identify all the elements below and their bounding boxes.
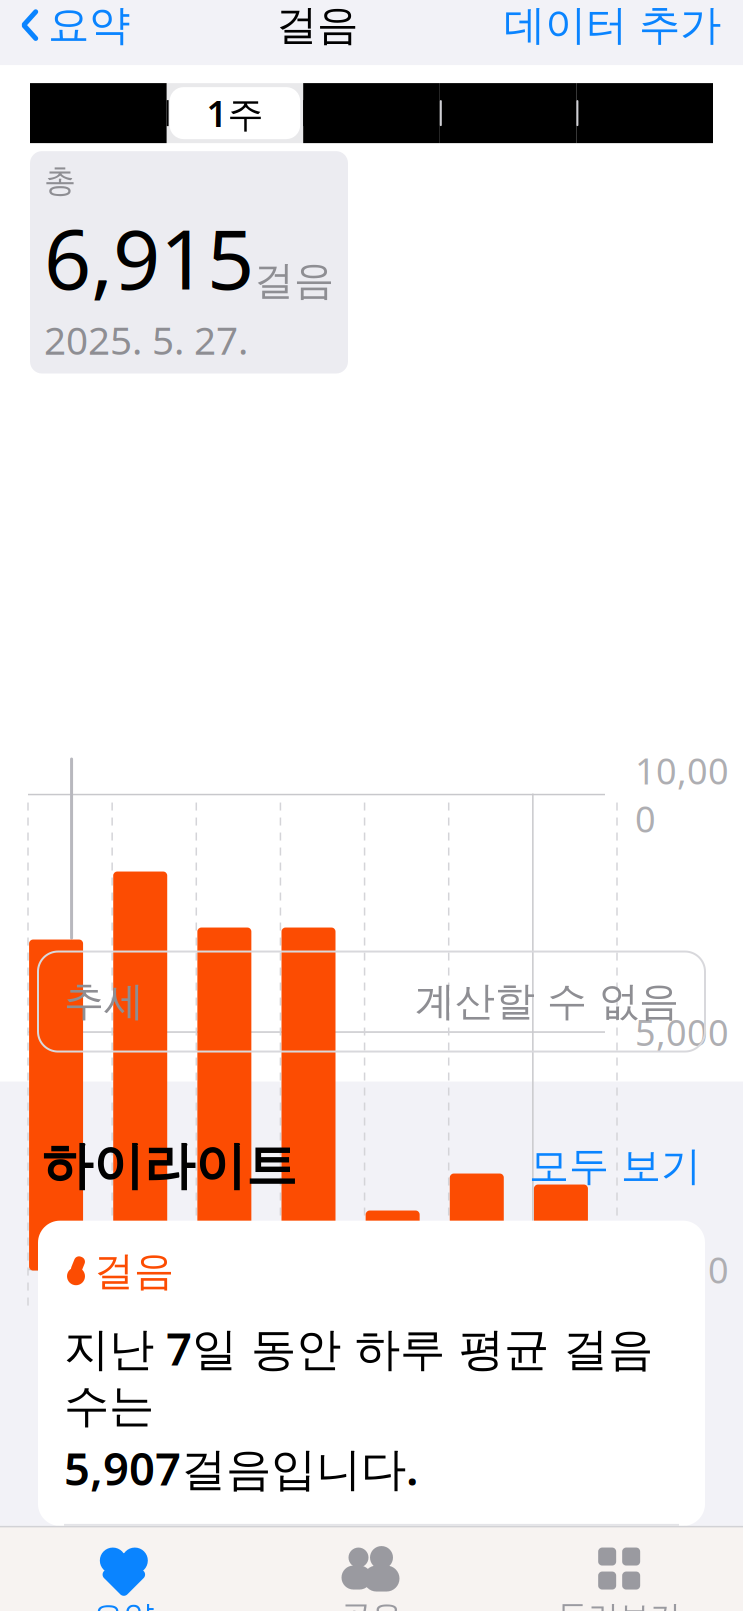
button[interactable]: 공유 [248,1540,495,1611]
button[interactable]: 1일 [30,83,167,143]
button[interactable]: 1개월 [303,83,440,143]
staticText: 하이라이트 [42,1135,297,1197]
button[interactable]: 1주 [167,83,303,143]
staticText: 화 [40,1282,75,1325]
button[interactable]: 모두 보기 [515,1133,701,1199]
staticText: 6,915 [44,202,254,312]
button[interactable]: 6개월 [440,83,576,143]
button[interactable]: 요약 [0,1540,248,1611]
staticText: 둘러보기 [557,1598,681,1611]
staticText: 5,000 [635,1008,729,1056]
button[interactable]: 1년 [576,83,713,143]
staticText: 공유 [340,1598,402,1611]
staticText: 요약 [93,1598,155,1611]
staticText: 지난 7일 동안 하루 평균 걸음 수는 [64,1318,653,1434]
staticText: 걸음 [94,1247,174,1296]
staticText: 1주 [206,89,263,137]
staticText: 데이터 추가 [504,0,721,50]
staticText: 걸음 [276,0,358,50]
button[interactable]: 데이터 추가 [504,0,743,60]
staticText: 요약 [48,0,130,50]
staticText: 계산할 수 없음 [415,977,679,1026]
staticText: 10,000 [635,747,729,842]
staticText: 수 [124,1282,159,1325]
button[interactable]: 요약 [0,0,130,60]
staticText: 추세 [64,977,144,1026]
staticText: 0 [708,1246,729,1293]
staticText: 2025. 5. 27. [44,314,248,365]
button[interactable]: 둘러보기 [495,1540,743,1611]
staticText: 총 [44,161,76,200]
button[interactable]: 추세 [0,951,743,1051]
button[interactable]: 걸음 [0,1199,743,1526]
staticText: 모두 보기 [529,1141,701,1191]
staticText: 걸음 [254,256,334,305]
staticText: 5,907걸음입니다. [64,1438,419,1498]
